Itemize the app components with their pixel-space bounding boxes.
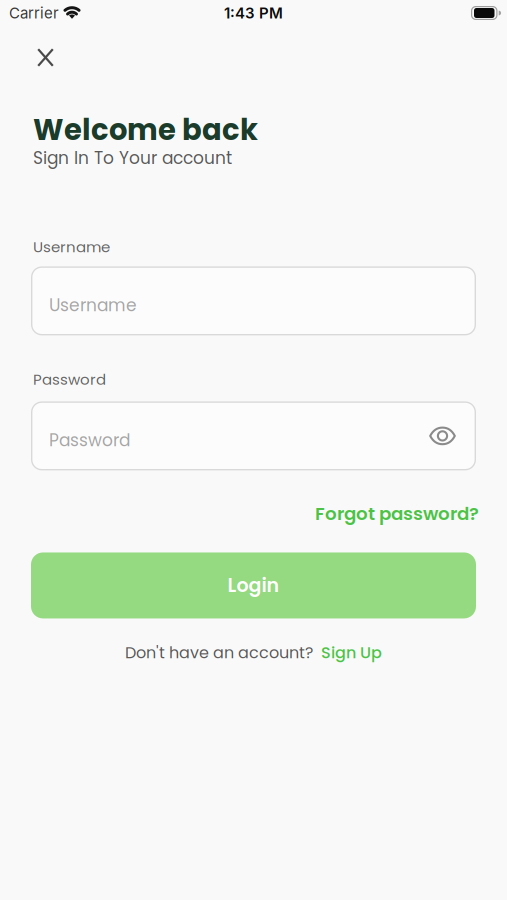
- button[interactable]: Sign Up: [321, 641, 382, 664]
- staticText: Sign In To Your account: [33, 146, 232, 170]
- staticText: Carrier: [9, 4, 59, 22]
- staticText: Password: [33, 369, 106, 390]
- button[interactable]: Login: [31, 552, 476, 618]
- button[interactable]: Forgot password?: [315, 501, 479, 526]
- staticText: Password: [49, 428, 130, 452]
- staticText: Welcome back: [33, 109, 258, 150]
- staticText: Username: [33, 236, 110, 257]
- staticText: Username: [49, 293, 137, 317]
- staticText: Sign Up: [321, 641, 382, 664]
- button[interactable]: Show password: [429, 426, 456, 445]
- staticText: Forgot password?: [315, 501, 479, 526]
- staticText: Login: [227, 572, 279, 599]
- staticText: 1:43 PM: [224, 4, 283, 22]
- staticText: Don't have an account?: [125, 641, 313, 664]
- button[interactable]: Close: [0, 26, 54, 67]
